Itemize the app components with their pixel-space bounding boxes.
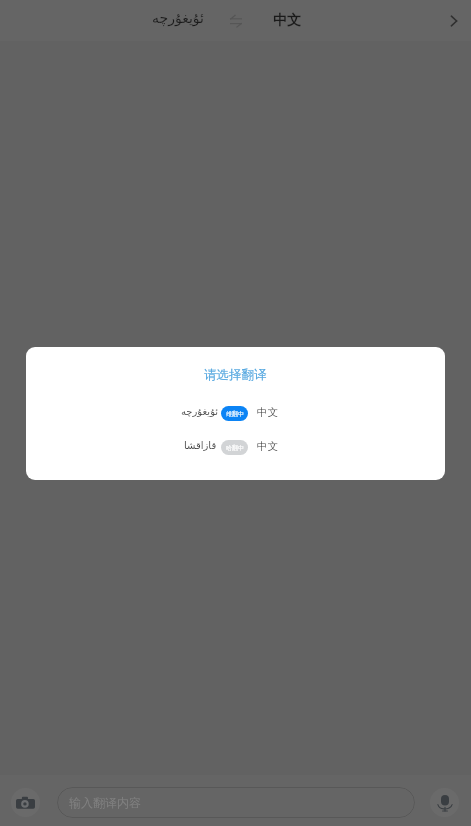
staticText: ئۇيغۇرچە — [152, 10, 204, 26]
staticText: 请选择翻译 — [204, 367, 267, 383]
staticText: 输入翻译内容 — [69, 795, 141, 810]
staticText: ئۇيغۇرچە — [181, 406, 219, 418]
button[interactable]: Voice input — [430, 788, 459, 817]
button[interactable]: Camera — [11, 788, 40, 817]
button[interactable]: ئۇيغۇرچە — [146, 2, 210, 34]
staticText: 中文 — [273, 12, 301, 30]
staticText: 哈翻中 — [226, 444, 244, 452]
button[interactable]: ئۇيغۇرچە — [26, 402, 445, 424]
button[interactable]: قازاقشا — [26, 436, 445, 458]
button[interactable]: 输入翻译内容 — [57, 787, 415, 818]
button[interactable]: Next — [436, 3, 471, 39]
button[interactable]: 中文 — [267, 4, 307, 38]
staticText: 维翻中 — [226, 410, 244, 418]
staticText: 中文 — [257, 406, 278, 419]
staticText: 中文 — [257, 440, 278, 453]
staticText: قازاقشا — [184, 440, 217, 452]
